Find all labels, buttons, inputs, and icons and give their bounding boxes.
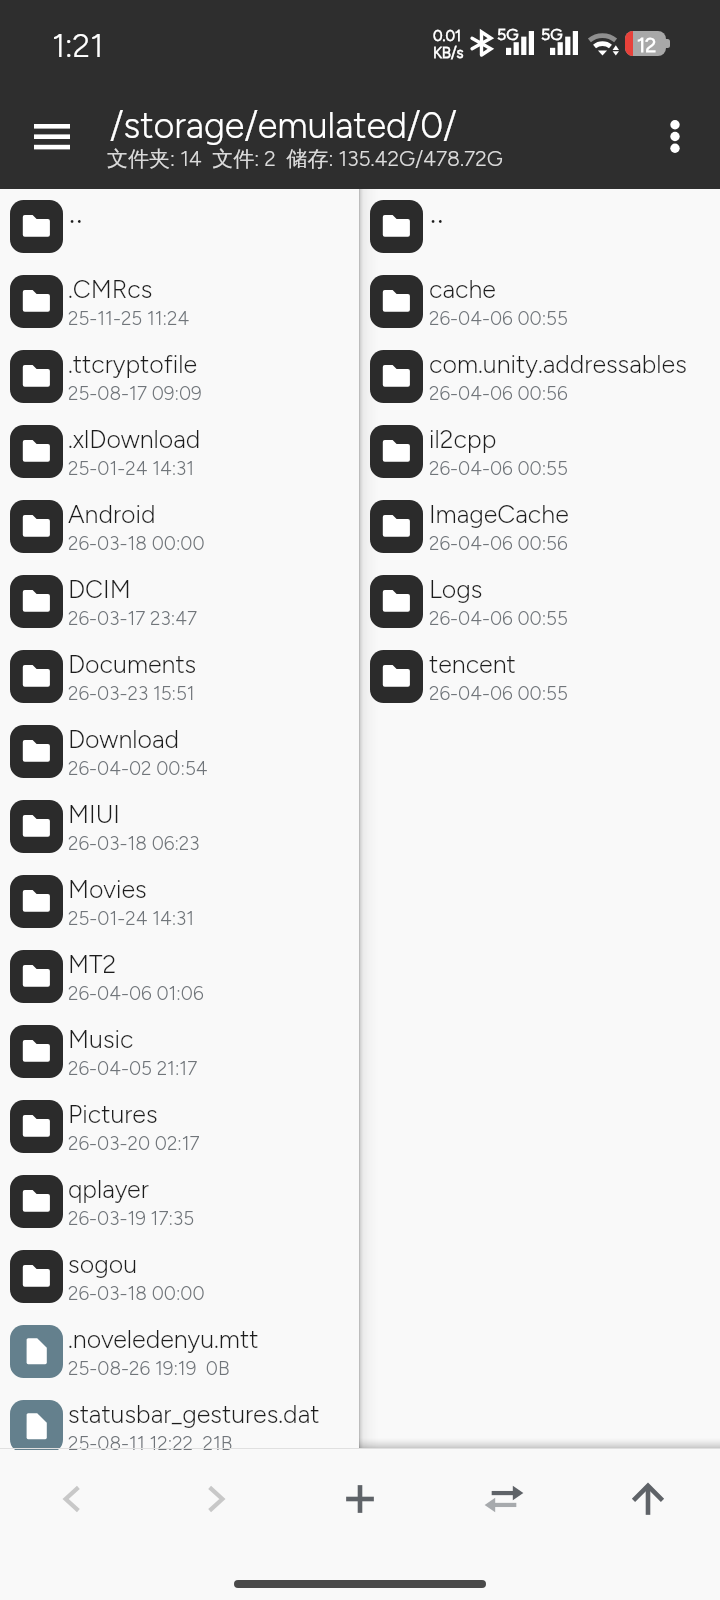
- button[interactable]: ..: [0, 189, 359, 264]
- button[interactable]: Documents: [0, 639, 359, 714]
- staticText: 26-04-02 00:54: [68, 757, 356, 780]
- staticText: il2cpp: [429, 424, 720, 454]
- staticText: 26-03-18 00:00: [68, 532, 356, 555]
- staticText: 26-04-05 21:17: [68, 1057, 356, 1080]
- staticText: com.unity.addressables: [429, 349, 720, 379]
- staticText: 5G: [497, 25, 519, 44]
- staticText: 26-04-06 01:06: [68, 982, 356, 1005]
- staticText: /storage/emulated/0/: [110, 104, 457, 147]
- staticText: 26-04-06 00:55: [429, 607, 720, 630]
- staticText: .xlDownload: [68, 424, 356, 454]
- staticText: 1:21: [52, 27, 104, 65]
- button[interactable]: Pictures: [0, 1089, 359, 1164]
- button[interactable]: com.unity.addressables: [359, 339, 720, 414]
- button[interactable]: Logs: [359, 564, 720, 639]
- button[interactable]: New: [288, 1450, 432, 1547]
- staticText: 26-04-06 00:56: [429, 382, 720, 405]
- staticText: 25-11-25 11:24: [68, 307, 356, 330]
- staticText: cache: [429, 274, 720, 304]
- staticText: MIUI: [68, 799, 356, 829]
- staticText: 26-04-06 00:55: [429, 457, 720, 480]
- button[interactable]: ..: [359, 189, 720, 264]
- staticText: Movies: [68, 874, 356, 904]
- button[interactable]: ImageCache: [359, 489, 720, 564]
- staticText: 26-03-20 02:17: [68, 1132, 356, 1155]
- button[interactable]: Forward: [144, 1450, 288, 1547]
- button[interactable]: cache: [359, 264, 720, 339]
- staticText: Pictures: [68, 1099, 356, 1129]
- button[interactable]: statusbar_gestures.dat: [0, 1389, 359, 1464]
- button[interactable]: .noveledenyu.mtt: [0, 1314, 359, 1389]
- staticText: 文件夹: 14 文件: 2 储存: 135.42G/478.72G: [107, 146, 503, 172]
- staticText: 26-03-18 00:00: [68, 1282, 356, 1305]
- staticText: 25-08-26 19:19 0B: [68, 1357, 356, 1380]
- button[interactable]: More options: [641, 102, 709, 170]
- staticText: DCIM: [68, 574, 356, 604]
- staticText: 26-03-17 23:47: [68, 607, 356, 630]
- staticText: 5G: [541, 25, 563, 44]
- button[interactable]: .ttcryptofile: [0, 339, 359, 414]
- button[interactable]: tencent: [359, 639, 720, 714]
- staticText: 25-01-24 14:31: [68, 907, 356, 930]
- staticText: .CMRcs: [68, 274, 356, 304]
- staticText: ImageCache: [429, 499, 720, 529]
- button[interactable]: Android: [0, 489, 359, 564]
- staticText: 26-03-23 15:51: [68, 682, 356, 705]
- staticText: KB/s: [433, 44, 464, 62]
- button[interactable]: Up: [576, 1450, 720, 1547]
- button[interactable]: DCIM: [0, 564, 359, 639]
- button[interactable]: MT2: [0, 939, 359, 1014]
- staticText: .noveledenyu.mtt: [68, 1324, 356, 1354]
- button[interactable]: Movies: [0, 864, 359, 939]
- staticText: Music: [68, 1024, 356, 1054]
- staticText: .ttcryptofile: [68, 349, 356, 379]
- staticText: 25-08-17 09:09: [68, 382, 356, 405]
- staticText: Logs: [429, 574, 720, 604]
- staticText: 26-04-06 00:55: [429, 307, 720, 330]
- button[interactable]: Menu: [18, 102, 86, 170]
- button[interactable]: Download: [0, 714, 359, 789]
- button[interactable]: sogou: [0, 1239, 359, 1314]
- staticText: qplayer: [68, 1174, 356, 1204]
- staticText: 26-04-06 00:55: [429, 682, 720, 705]
- staticText: ..: [430, 193, 720, 231]
- staticText: 12: [637, 33, 657, 57]
- staticText: 26-03-18 06:23: [68, 832, 356, 855]
- button[interactable]: .CMRcs: [0, 264, 359, 339]
- button[interactable]: il2cpp: [359, 414, 720, 489]
- staticText: 26-04-06 00:56: [429, 532, 720, 555]
- staticText: 0.01: [433, 27, 462, 45]
- button[interactable]: .xlDownload: [0, 414, 359, 489]
- button[interactable]: qplayer: [0, 1164, 359, 1239]
- staticText: tencent: [429, 649, 720, 679]
- staticText: 25-08-11 12:22 21B: [68, 1432, 356, 1455]
- staticText: Android: [68, 499, 356, 529]
- button[interactable]: Back: [0, 1450, 144, 1547]
- staticText: Documents: [68, 649, 356, 679]
- button[interactable]: Switch panes: [432, 1450, 576, 1547]
- staticText: ..: [69, 193, 357, 231]
- button[interactable]: MIUI: [0, 789, 359, 864]
- button[interactable]: Music: [0, 1014, 359, 1089]
- staticText: MT2: [68, 949, 356, 979]
- staticText: statusbar_gestures.dat: [68, 1399, 356, 1429]
- staticText: sogou: [68, 1249, 356, 1279]
- staticText: 26-03-19 17:35: [68, 1207, 356, 1230]
- staticText: 25-01-24 14:31: [68, 457, 356, 480]
- staticText: Download: [68, 724, 356, 754]
